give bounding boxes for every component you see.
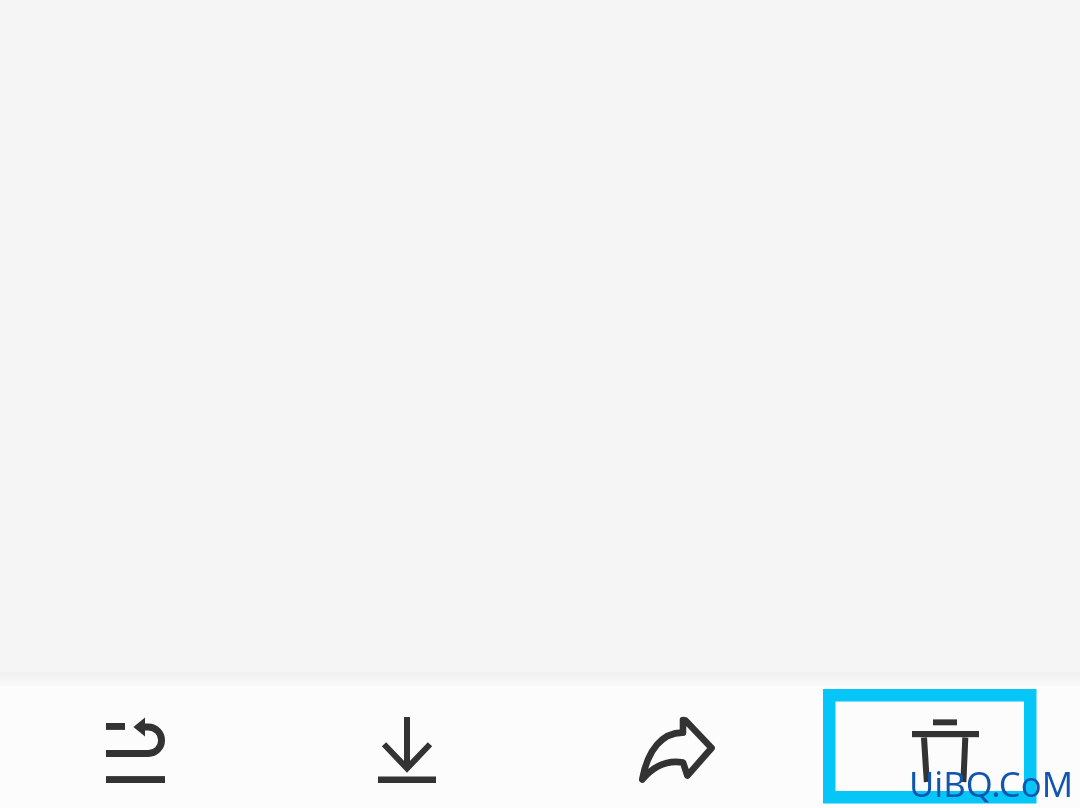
button[interactable]: Download	[270, 674, 540, 808]
button[interactable]: Delete	[810, 674, 1080, 808]
button[interactable]: Share	[540, 674, 810, 808]
staticText: UiBQ.CoM	[909, 760, 1074, 807]
button[interactable]: Wrap text	[0, 674, 270, 808]
